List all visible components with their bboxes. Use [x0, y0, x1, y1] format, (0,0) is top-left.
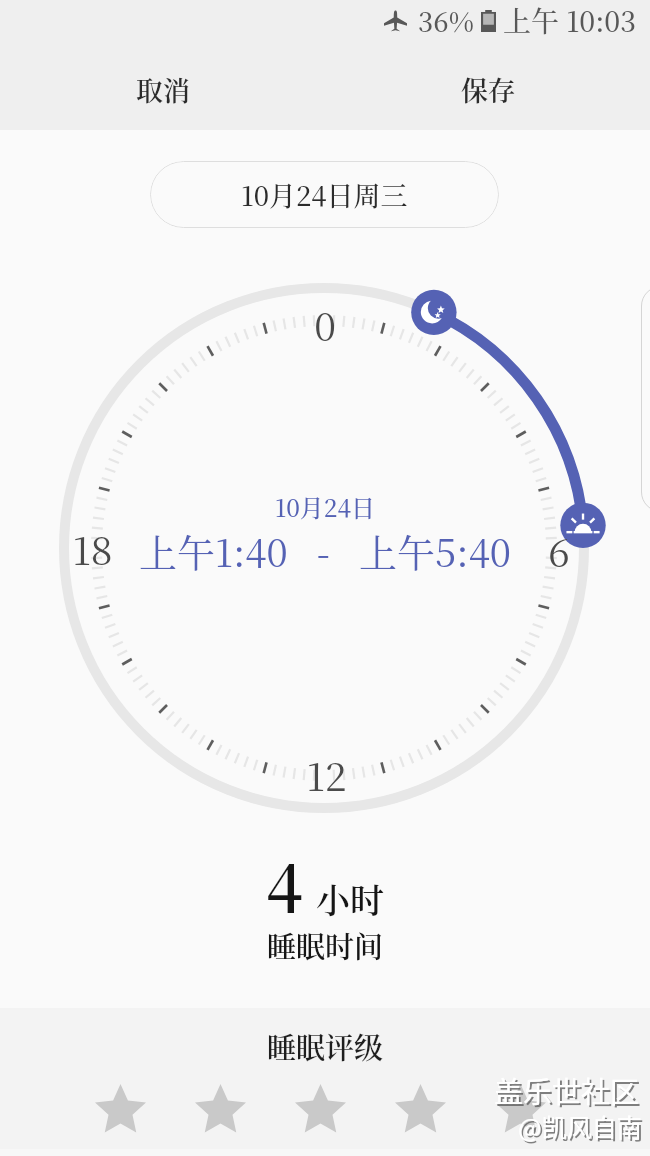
button[interactable]: Sleep rating star [195, 1084, 246, 1133]
staticText: 0 [314, 296, 336, 348]
staticText: 10月24日 [275, 489, 376, 523]
staticText: 10月24日周三 [241, 175, 408, 214]
button[interactable]: Sleep rating star [295, 1084, 346, 1133]
staticText: 上午 10:03 [503, 0, 637, 40]
staticText: 18 [72, 520, 113, 572]
staticText: 上午1:40 - 上午5:40 [139, 523, 511, 578]
button[interactable]: Sleep rating star [395, 1084, 446, 1133]
staticText: 睡眠时间 [267, 925, 384, 967]
staticText: 小时 [316, 874, 384, 923]
staticText: 12 [306, 746, 347, 798]
button[interactable]: Sleep rating star [495, 1084, 546, 1133]
staticText: 6 [548, 522, 570, 574]
button[interactable]: Sleep rating star [95, 1084, 146, 1133]
button[interactable]: 取消 [0, 48, 325, 130]
staticText: 盖乐世社区 [496, 1071, 642, 1113]
staticText: 36% [418, 1, 474, 40]
staticText: @凯风自南 [518, 1108, 642, 1144]
button[interactable]: 10月24日周三 [150, 161, 499, 228]
staticText: 保存 [461, 70, 515, 109]
staticText: 盖乐世社区 [494, 1069, 640, 1111]
button[interactable]: 保存 [325, 48, 650, 130]
staticText: 取消 [136, 70, 190, 109]
staticText: 睡眠评级 [267, 1026, 384, 1068]
staticText: @凯风自南 [520, 1110, 644, 1146]
staticText: 4 [266, 838, 303, 930]
